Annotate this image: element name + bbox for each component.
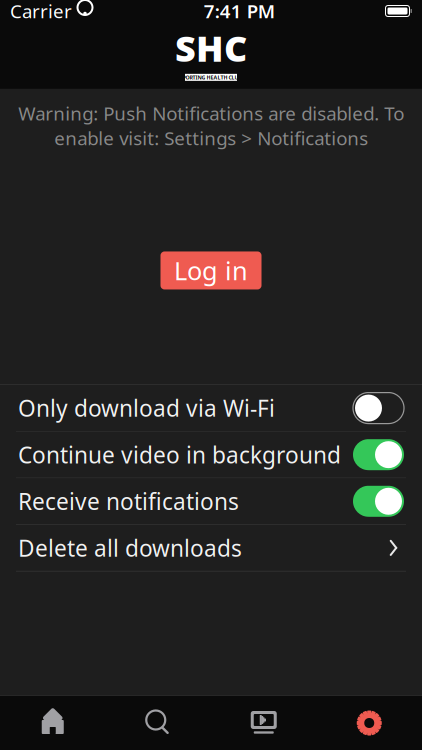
button[interactable]: Search <box>105 696 211 750</box>
staticText: Receive notifications <box>18 486 239 516</box>
staticText: Delete all downloads <box>18 533 242 563</box>
button[interactable]: Videos <box>211 696 316 750</box>
staticText: SPORTING HEALTH CLUB <box>179 74 242 81</box>
button[interactable]: Log in <box>160 251 261 289</box>
button[interactable]: Continue video in background <box>0 432 422 478</box>
staticText: Continue video in background <box>18 440 341 470</box>
staticText: SHC <box>175 24 247 72</box>
staticText: Log in <box>174 254 248 287</box>
button[interactable]: Home <box>0 696 105 750</box>
staticText: Only download via Wi-Fi <box>18 393 275 423</box>
staticText: Carrier <box>10 0 72 23</box>
button[interactable]: Delete all downloads <box>0 525 422 571</box>
button[interactable]: Receive notifications <box>0 478 422 524</box>
button[interactable]: Only download via Wi-Fi <box>0 385 422 431</box>
button[interactable]: Settings <box>316 696 422 750</box>
staticText: Warning: Push Notifications are disabled… <box>18 101 404 150</box>
staticText: 7:41 PM <box>204 0 275 23</box>
